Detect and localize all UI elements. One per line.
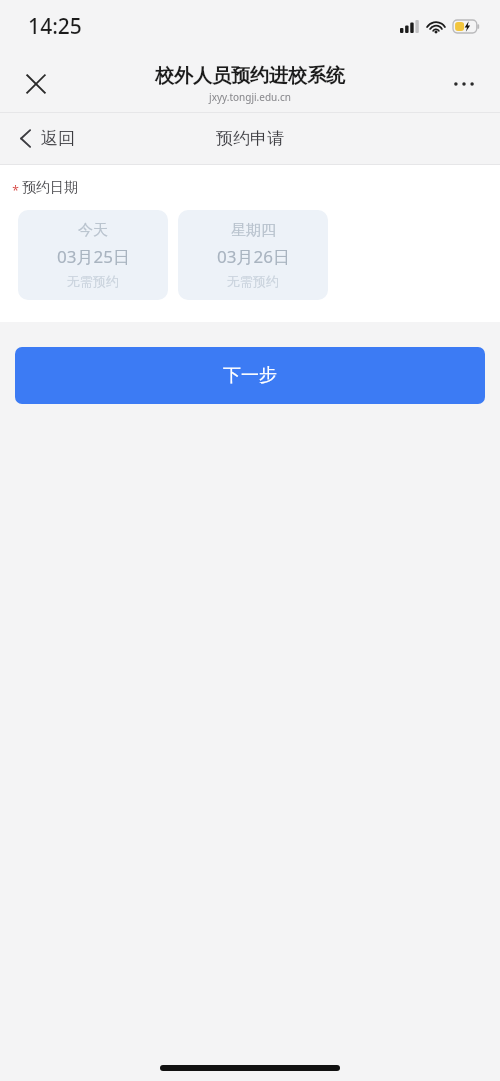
button[interactable]: 今天 bbox=[18, 210, 168, 300]
staticText: 下一步 bbox=[223, 364, 277, 387]
button[interactable]: 下一步 bbox=[15, 347, 485, 404]
staticText: 03月26日 bbox=[217, 245, 290, 268]
staticText: 预约日期 bbox=[22, 179, 78, 197]
staticText: jxyy.tongji.edu.cn bbox=[209, 90, 291, 104]
staticText: 14:25 bbox=[28, 12, 82, 41]
staticText: 返回 bbox=[41, 128, 75, 149]
staticText: 无需预约 bbox=[227, 273, 279, 289]
staticText: 今天 bbox=[78, 221, 108, 240]
button[interactable]: 返回 bbox=[12, 122, 83, 155]
staticText: 无需预约 bbox=[67, 273, 119, 289]
staticText: * bbox=[12, 182, 19, 198]
button[interactable]: Close bbox=[14, 62, 58, 106]
staticText: 校外人员预约进校系统 bbox=[155, 64, 345, 88]
staticText: 03月25日 bbox=[57, 245, 130, 268]
staticText: 预约申请 bbox=[216, 128, 284, 149]
button[interactable]: 星期四 bbox=[178, 210, 328, 300]
button[interactable]: More options bbox=[442, 62, 486, 106]
staticText: 星期四 bbox=[231, 221, 276, 240]
